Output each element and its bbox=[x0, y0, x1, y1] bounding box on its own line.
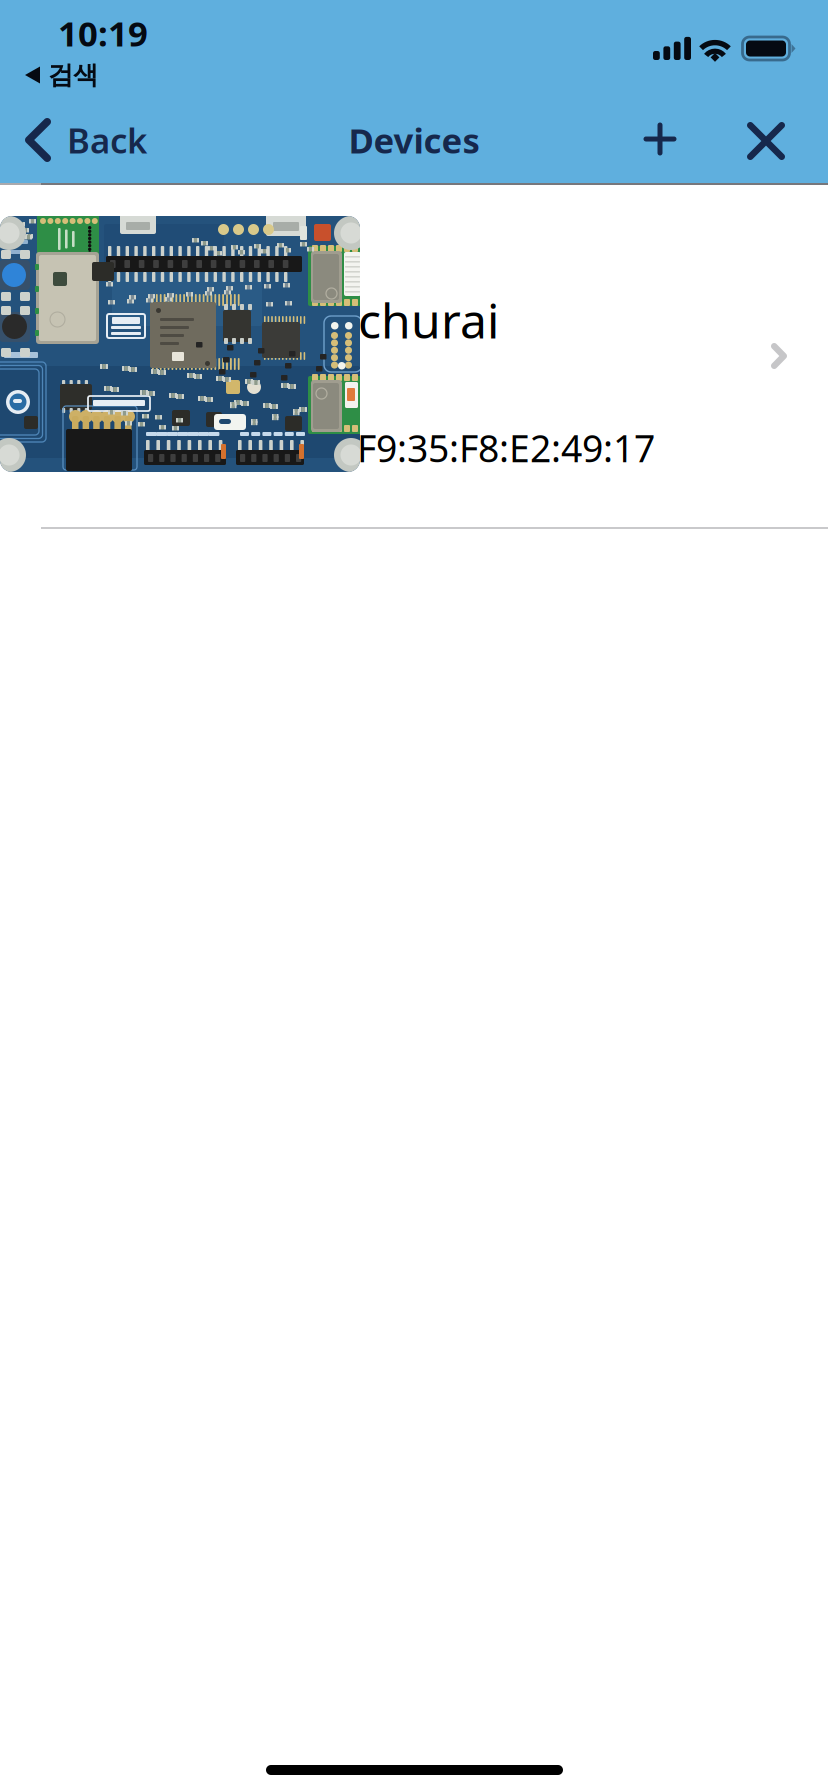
button[interactable]: Return to Search bbox=[0, 0, 130, 34]
staticText: 검색 bbox=[48, 59, 98, 90]
staticText: Devices bbox=[348, 117, 479, 163]
staticText: 10:19 bbox=[58, 10, 148, 56]
button[interactable]: Back bbox=[0, 0, 180, 96]
staticText: churai bbox=[358, 288, 499, 352]
staticText: F9:35:F8:E2:49:17 bbox=[357, 423, 655, 473]
staticText: Back bbox=[67, 117, 147, 163]
button[interactable]: Add device bbox=[0, 0, 90, 96]
button[interactable]: churai bbox=[0, 0, 828, 346]
button[interactable]: Close bbox=[0, 0, 90, 96]
